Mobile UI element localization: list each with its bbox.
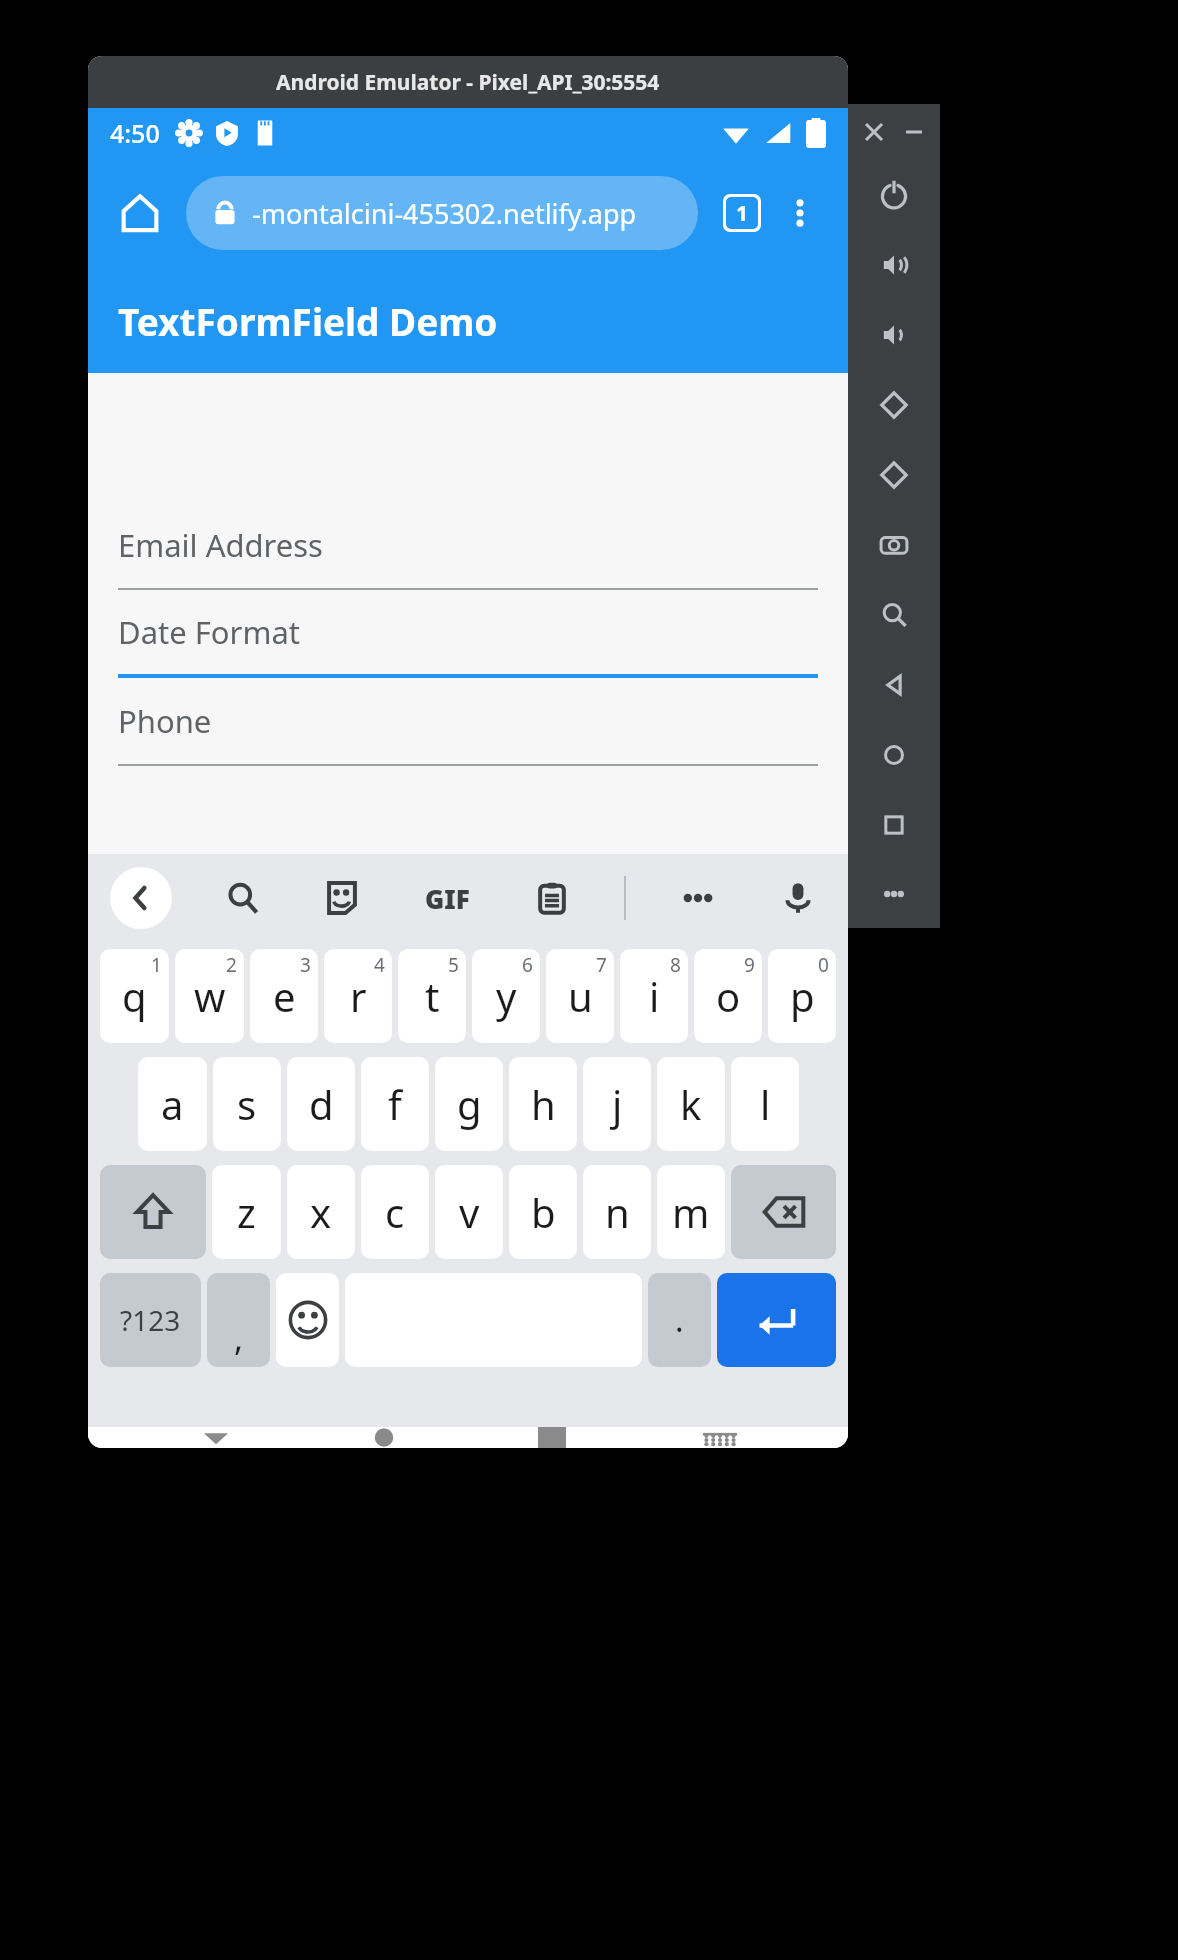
button[interactable]: o <box>694 949 762 1043</box>
button[interactable]: Home <box>848 720 940 790</box>
staticText: a <box>161 1077 184 1131</box>
staticText: k <box>680 1077 702 1131</box>
button[interactable]: j <box>583 1057 651 1151</box>
staticText: GIF <box>425 881 470 916</box>
button[interactable]: Voice input <box>770 870 826 926</box>
button[interactable]: Minimize <box>899 117 929 147</box>
staticText: i <box>649 969 660 1023</box>
staticText: Phone <box>118 700 212 742</box>
button[interactable]: Search <box>215 870 271 926</box>
button[interactable]: Phone <box>118 678 818 766</box>
staticText: 1 <box>151 952 162 978</box>
staticText: v <box>459 1185 480 1239</box>
button[interactable]: b <box>509 1165 577 1259</box>
button[interactable]: Back <box>110 867 172 929</box>
staticText: -montalcini-455302.netlify.app <box>252 195 637 232</box>
button[interactable]: p <box>768 949 836 1043</box>
staticText: 1 <box>736 199 749 228</box>
button[interactable]: Stickers <box>314 870 370 926</box>
button[interactable]: Symbols <box>100 1273 201 1367</box>
staticText: g <box>457 1077 482 1131</box>
staticText: m <box>672 1185 710 1239</box>
button[interactable]: e <box>250 949 318 1043</box>
button[interactable]: Back <box>848 650 940 720</box>
button[interactable]: Emoji <box>276 1273 339 1367</box>
button[interactable]: s <box>213 1057 281 1151</box>
button[interactable]: u <box>546 949 614 1043</box>
staticText: 9 <box>744 952 755 978</box>
staticText: 5 <box>448 952 459 978</box>
staticText: 3 <box>300 952 311 978</box>
button[interactable]: k <box>657 1057 725 1151</box>
button[interactable]: Tabs <box>712 183 772 243</box>
button[interactable]: Rotate left <box>848 370 940 440</box>
button[interactable]: q <box>100 949 169 1043</box>
button[interactable]: Zoom <box>848 580 940 650</box>
button[interactable]: GIF <box>414 865 480 931</box>
button[interactable]: Switch keyboard <box>680 1427 760 1448</box>
button[interactable]: More options <box>772 185 828 241</box>
button[interactable]: f <box>361 1057 429 1151</box>
button[interactable]: v <box>435 1165 503 1259</box>
button[interactable]: n <box>583 1165 651 1259</box>
button[interactable]: Volume up <box>848 230 940 300</box>
staticText: 4 <box>374 952 385 978</box>
button[interactable]: i <box>620 949 688 1043</box>
staticText: d <box>309 1077 334 1131</box>
staticText: h <box>531 1077 556 1131</box>
button[interactable]: g <box>435 1057 503 1151</box>
staticText: n <box>605 1185 630 1239</box>
button[interactable]: Home <box>344 1427 424 1448</box>
button[interactable]: l <box>731 1057 799 1151</box>
button[interactable]: Home <box>108 181 172 245</box>
button[interactable]: y <box>472 949 540 1043</box>
staticText: 7 <box>596 952 607 978</box>
button[interactable]: Date Format <box>118 590 818 678</box>
button[interactable]: Shift <box>100 1165 206 1259</box>
button[interactable]: Rotate right <box>848 440 940 510</box>
staticText: w <box>194 969 226 1023</box>
staticText: y <box>496 969 517 1023</box>
staticText: s <box>237 1077 257 1131</box>
button[interactable]: More <box>670 870 726 926</box>
staticText: Email Address <box>118 524 323 566</box>
button[interactable]: Hide keyboard <box>176 1427 256 1448</box>
button[interactable]: Power <box>848 160 940 230</box>
staticText: u <box>568 969 593 1023</box>
button[interactable]: c <box>361 1165 429 1259</box>
staticText: 8 <box>670 952 681 978</box>
button[interactable]: m <box>657 1165 725 1259</box>
button[interactable]: Enter <box>717 1273 836 1367</box>
button[interactable]: Screenshot <box>848 510 940 580</box>
staticText: 6 <box>522 952 533 978</box>
button[interactable]: Close <box>859 117 889 147</box>
staticText: TextFormField Demo <box>118 296 498 346</box>
button[interactable]: w <box>175 949 244 1043</box>
button[interactable]: -montalcini-455302.netlify.app <box>186 176 698 250</box>
staticText: o <box>716 969 741 1023</box>
button[interactable]: Email Address <box>118 502 818 590</box>
staticText: x <box>310 1185 332 1239</box>
button[interactable]: Backspace <box>731 1165 836 1259</box>
button[interactable]: z <box>212 1165 281 1259</box>
button[interactable]: a <box>138 1057 207 1151</box>
staticText: r <box>350 969 367 1023</box>
staticText: 0 <box>818 952 829 978</box>
button[interactable]: t <box>398 949 466 1043</box>
button[interactable]: Overview <box>848 790 940 860</box>
button[interactable]: Comma <box>207 1273 270 1367</box>
staticText: p <box>790 969 815 1023</box>
staticText: f <box>388 1077 402 1131</box>
button[interactable]: r <box>324 949 392 1043</box>
button[interactable]: More <box>848 860 940 928</box>
button[interactable]: Clipboard <box>524 870 580 926</box>
button[interactable]: h <box>509 1057 577 1151</box>
button[interactable]: Period <box>648 1273 711 1367</box>
button[interactable]: x <box>287 1165 355 1259</box>
staticText: Android Emulator - Pixel_API_30:5554 <box>276 68 660 97</box>
staticText: j <box>612 1077 623 1131</box>
button[interactable]: Overview <box>512 1427 592 1448</box>
button[interactable]: Volume down <box>848 300 940 370</box>
button[interactable]: d <box>287 1057 355 1151</box>
